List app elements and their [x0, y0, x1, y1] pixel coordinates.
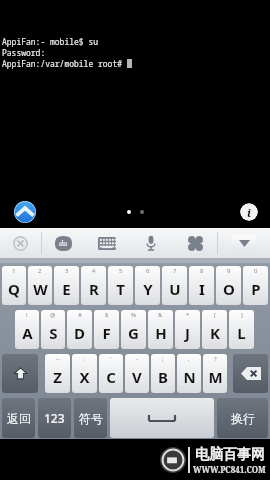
staticText: :	[84, 355, 86, 363]
button[interactable]: 4	[81, 266, 106, 305]
staticText: 5	[119, 267, 123, 275]
staticText: 0	[254, 267, 258, 275]
button[interactable]: 3	[54, 266, 79, 305]
staticText: '	[110, 355, 112, 363]
button[interactable]: ?	[203, 354, 227, 393]
button[interactable]: %	[121, 310, 146, 349]
staticText: 电脑百事网	[195, 446, 265, 464]
button[interactable]: $	[94, 310, 119, 349]
staticText: P	[251, 279, 261, 299]
staticText: 符号	[79, 411, 103, 426]
staticText: 7	[173, 267, 177, 275]
staticText: M	[208, 367, 223, 387]
button[interactable]: Voice input	[129, 228, 173, 258]
staticText: K	[210, 323, 220, 343]
button[interactable]: -	[125, 354, 149, 393]
staticText: %	[131, 311, 136, 319]
staticText: 4	[92, 267, 96, 275]
button[interactable]: 123	[38, 398, 71, 438]
staticText: O	[223, 279, 235, 299]
staticText: I	[199, 279, 205, 299]
button[interactable]: @	[41, 310, 65, 349]
staticText: !	[26, 311, 28, 319]
staticText: WWW.PC841.COM	[193, 464, 266, 475]
button[interactable]: Space	[110, 398, 214, 438]
staticText: R	[89, 279, 99, 299]
button[interactable]: !	[15, 310, 39, 349]
staticText: -	[136, 355, 138, 363]
button[interactable]: :	[72, 354, 97, 393]
button[interactable]: Keyboard layout	[85, 228, 129, 258]
staticText: )	[241, 311, 243, 319]
button[interactable]: Info	[240, 203, 258, 221]
staticText: 换行	[231, 411, 255, 426]
staticText: J	[185, 323, 190, 343]
button[interactable]: Hide keyboard	[218, 228, 270, 258]
staticText: X	[79, 367, 90, 387]
staticText: du	[59, 239, 68, 249]
staticText: Q	[8, 279, 20, 299]
staticText: #	[78, 311, 82, 319]
staticText: AppiFan:/var/mobile root#	[2, 58, 127, 69]
button[interactable]: ~	[45, 354, 70, 393]
button[interactable]: Shift	[2, 354, 38, 393]
staticText: Z	[53, 367, 62, 387]
staticText: F	[102, 323, 111, 343]
button[interactable]: Scroll up	[14, 201, 36, 223]
staticText: Y	[143, 279, 153, 299]
staticText: B	[158, 367, 168, 387]
staticText: E	[62, 279, 71, 299]
staticText: A	[22, 323, 33, 343]
staticText: (	[214, 311, 216, 319]
staticText: *	[186, 311, 190, 319]
staticText: L	[237, 323, 246, 343]
staticText: S	[49, 323, 58, 343]
button[interactable]: 符号	[74, 398, 107, 438]
staticText: ?	[214, 355, 217, 363]
button[interactable]: &	[148, 310, 173, 349]
button[interactable]: 2	[28, 266, 52, 305]
staticText: W	[33, 279, 48, 299]
button[interactable]: 0	[243, 266, 268, 305]
button[interactable]: '	[99, 354, 123, 393]
button[interactable]: Backspace	[233, 354, 268, 393]
staticText: 3	[65, 267, 69, 275]
staticText: 8	[200, 267, 204, 275]
button[interactable]: Baidu input	[42, 228, 85, 258]
staticText: $	[105, 311, 109, 319]
button[interactable]: 6	[135, 266, 160, 305]
staticText: 1	[12, 267, 16, 275]
staticText: ,	[188, 355, 190, 363]
button[interactable]: )	[229, 310, 254, 349]
button[interactable]: *	[175, 310, 200, 349]
button[interactable]: More	[173, 228, 217, 258]
button[interactable]: (	[202, 310, 227, 349]
button[interactable]: 1	[2, 266, 26, 305]
staticText: 返回	[7, 411, 31, 426]
staticText: Password:	[2, 47, 46, 58]
staticText: i	[247, 205, 251, 220]
button[interactable]: 返回	[2, 398, 35, 438]
button[interactable]: 8	[189, 266, 214, 305]
staticText: V	[132, 367, 142, 387]
staticText: U	[169, 279, 181, 299]
staticText: N	[183, 367, 196, 387]
staticText: AppiFan:- mobile$ su	[2, 36, 98, 47]
button[interactable]: 换行	[217, 398, 268, 438]
staticText: @	[50, 311, 56, 319]
staticText: &	[158, 311, 163, 319]
button[interactable]: #	[67, 310, 92, 349]
button[interactable]: 5	[108, 266, 133, 305]
staticText: T	[116, 279, 125, 299]
button[interactable]: 9	[216, 266, 241, 305]
button[interactable]: ;	[151, 354, 175, 393]
staticText: 6	[146, 267, 150, 275]
staticText: C	[106, 367, 116, 387]
button[interactable]: ,	[177, 354, 201, 393]
staticText: 123	[44, 410, 65, 426]
staticText: ~	[56, 355, 60, 363]
button[interactable]: 7	[162, 266, 187, 305]
staticText: D	[74, 323, 85, 343]
staticText: 9	[227, 267, 231, 275]
button[interactable]: Close keyboard	[0, 228, 41, 258]
